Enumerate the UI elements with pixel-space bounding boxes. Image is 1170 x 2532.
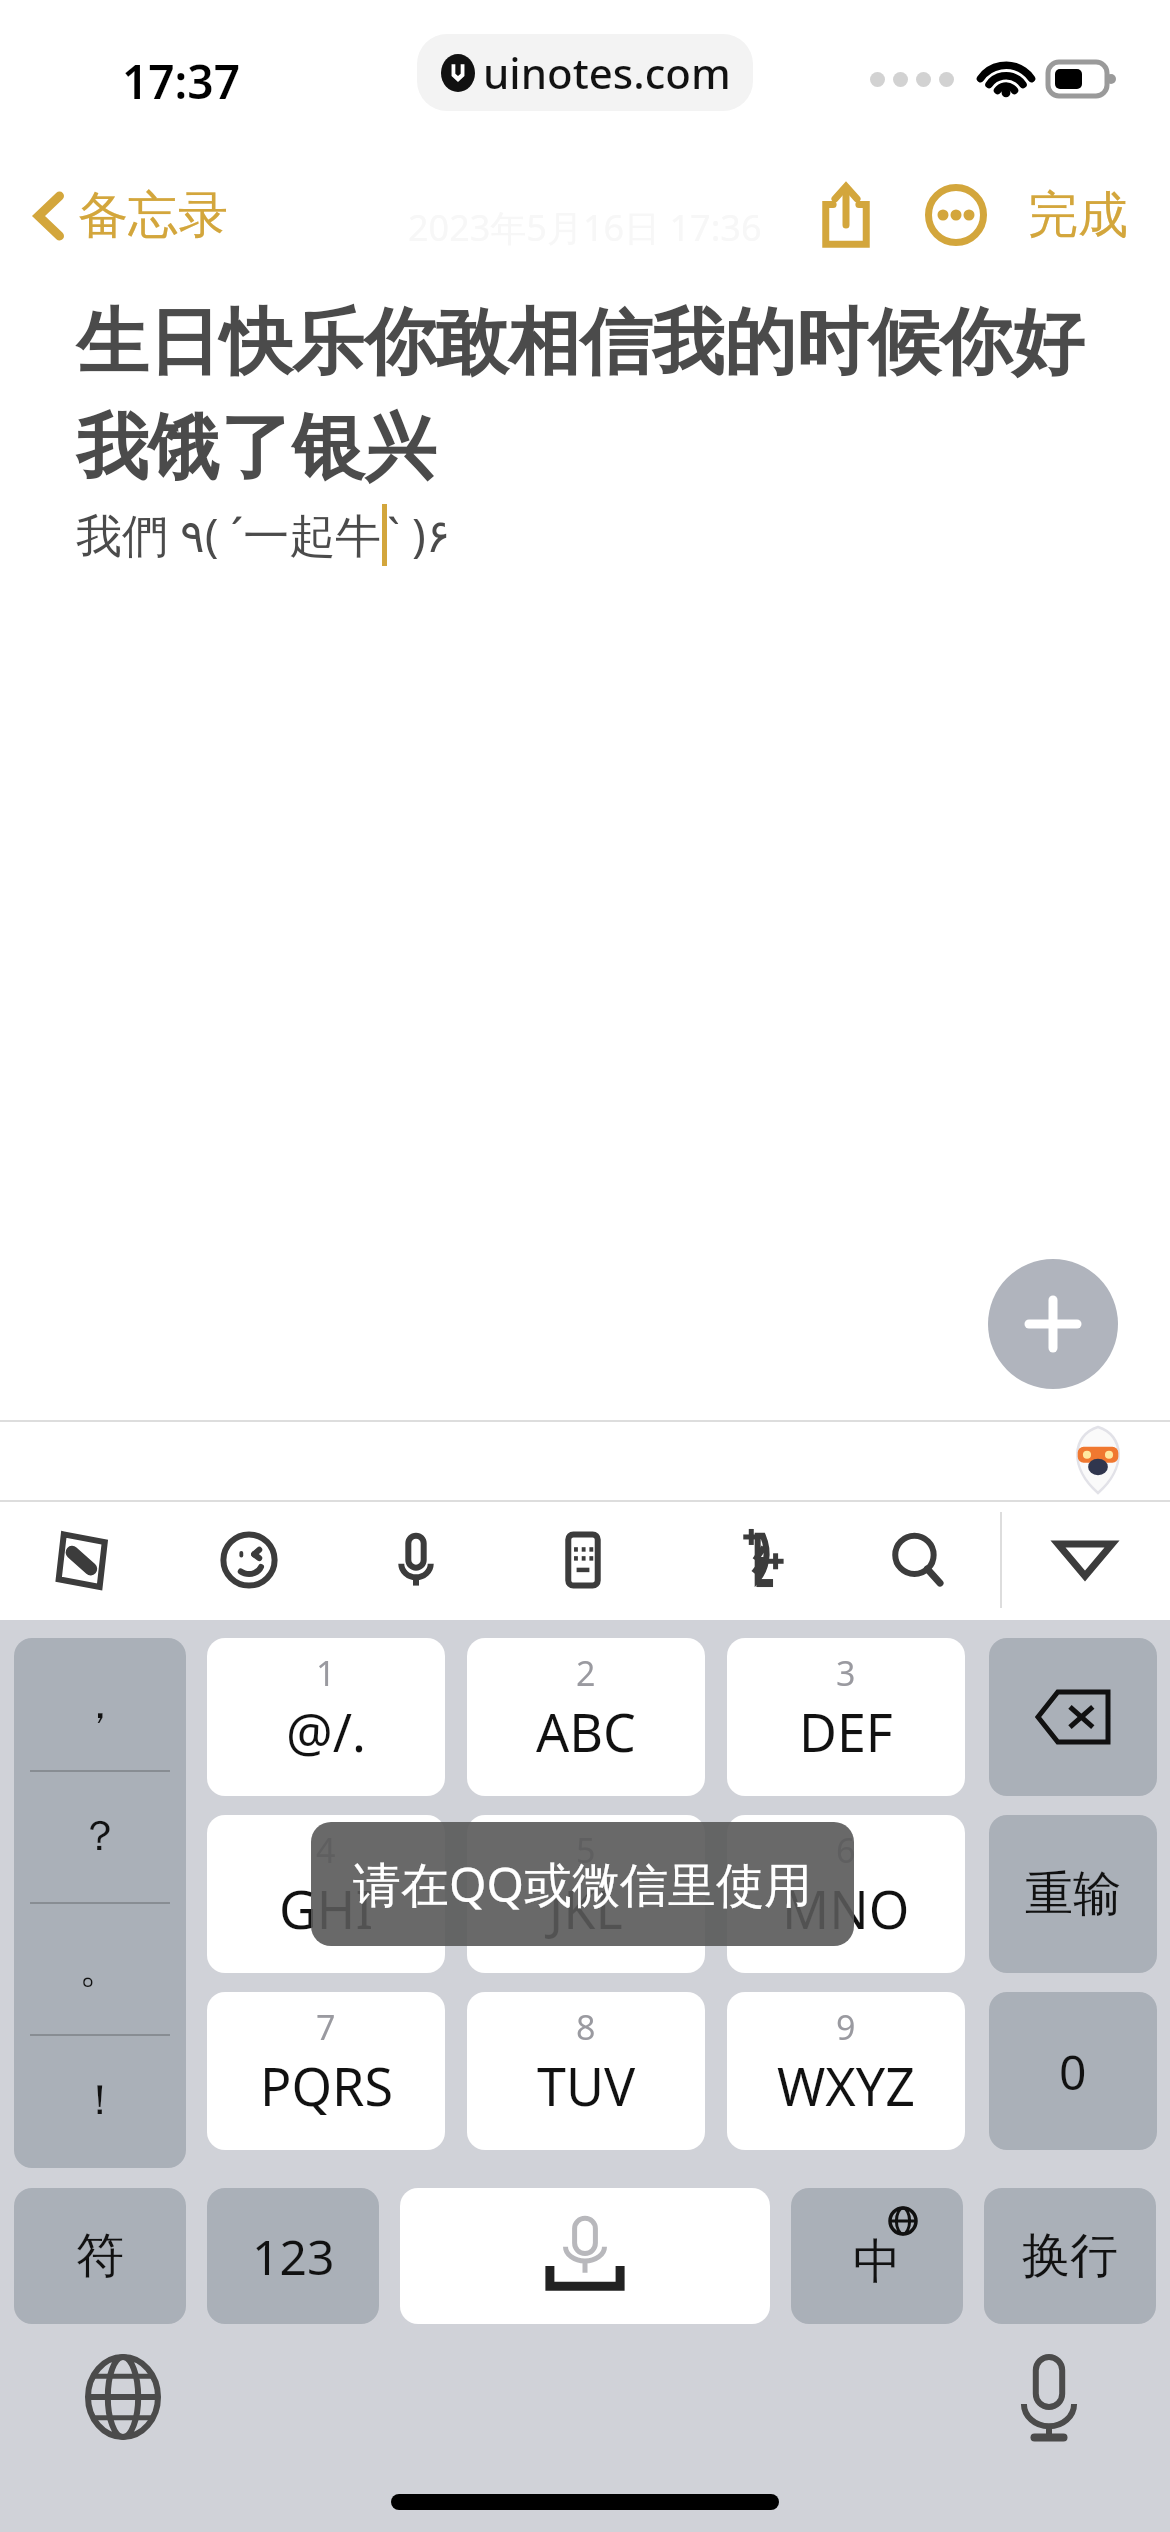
button[interactable]: 5 [467, 1815, 705, 1973]
staticText: 备忘录 [78, 184, 228, 247]
button[interactable]: Delete [989, 1638, 1157, 1796]
staticText: PQRS [260, 2050, 393, 2121]
staticText: 0 [1059, 2039, 1087, 2104]
staticText: 换行 [1022, 2226, 1118, 2286]
staticText: ， [79, 1678, 121, 1731]
staticText: MNO [782, 1873, 910, 1944]
staticText: ABC [536, 1696, 636, 1767]
staticText: 。 [79, 1942, 121, 1995]
staticText: 3 [836, 1650, 856, 1696]
button[interactable]: 8 [467, 1992, 705, 2150]
staticText: 重输 [1025, 1864, 1121, 1924]
staticText: 生日快乐你敢相信我的时候你好我饿了银兴 [76, 298, 1110, 493]
button[interactable]: 2 [467, 1638, 705, 1796]
staticText: uinotes.com [483, 44, 731, 101]
button[interactable]: 123 [207, 2188, 379, 2324]
button[interactable]: Sogou [0, 1500, 166, 1620]
staticText: JKL [549, 1873, 623, 1944]
staticText: ？ [79, 1810, 121, 1863]
button[interactable]: 完成 [1016, 170, 1140, 261]
button[interactable]: Space [400, 2188, 770, 2324]
button[interactable]: 中 [791, 2188, 963, 2324]
button[interactable]: 重输 [989, 1815, 1157, 1973]
staticText: GHI [279, 1873, 374, 1944]
button[interactable]: Voice input [1004, 2352, 1094, 2442]
staticText: ` )۶ [387, 503, 451, 566]
staticText: 123 [252, 2224, 335, 2289]
staticText: ！ [79, 2074, 121, 2127]
button[interactable]: 9 [727, 1992, 965, 2150]
button[interactable]: More options [906, 165, 1006, 265]
button[interactable]: 4 [207, 1815, 445, 1973]
staticText: 6 [836, 1827, 856, 1873]
staticText: 中 [853, 2232, 901, 2292]
button[interactable]: 0 [989, 1992, 1157, 2150]
button[interactable]: 7 [207, 1992, 445, 2150]
staticText: 我們 ٩( ´一起牛 [76, 503, 382, 566]
staticText: 8 [576, 2004, 596, 2050]
button[interactable]: 3 [727, 1638, 965, 1796]
button[interactable]: Share [796, 165, 896, 265]
staticText: WXYZ [777, 2050, 916, 2121]
button[interactable]: Add attachment [988, 1259, 1118, 1389]
staticText: 1 [316, 1650, 336, 1696]
button[interactable]: 换行 [984, 2188, 1156, 2324]
staticText: 完成 [1028, 184, 1128, 247]
button[interactable]: 备忘录 [20, 172, 242, 259]
staticText: @/. [286, 1696, 367, 1767]
button[interactable]: Handwriting [666, 1500, 833, 1620]
button[interactable]: Voice input [332, 1500, 499, 1620]
staticText: 2 [576, 1650, 596, 1696]
staticText: DEF [799, 1696, 893, 1767]
button[interactable]: 1 [207, 1638, 445, 1796]
button[interactable]: Keyboard [499, 1500, 666, 1620]
staticText: 7 [316, 2004, 336, 2050]
button[interactable]: Hide keyboard [1000, 1500, 1170, 1620]
button[interactable]: ， [14, 1638, 186, 2168]
button[interactable]: 6 [727, 1815, 965, 1973]
staticText: 请在QQ或微信里使用 [353, 1851, 812, 1917]
button[interactable]: Input method icon [1064, 1426, 1132, 1494]
staticText: 符 [76, 2226, 124, 2286]
button[interactable]: 符 [14, 2188, 186, 2324]
staticText: 9 [836, 2004, 856, 2050]
staticText: 5 [576, 1827, 596, 1873]
button[interactable]: Switch language [78, 2352, 168, 2442]
button[interactable]: Emoji [166, 1500, 332, 1620]
staticText: 4 [316, 1827, 336, 1873]
button[interactable]: Search [833, 1500, 1000, 1620]
staticText: TUV [537, 2050, 636, 2121]
staticText: 17:37 [122, 50, 240, 113]
